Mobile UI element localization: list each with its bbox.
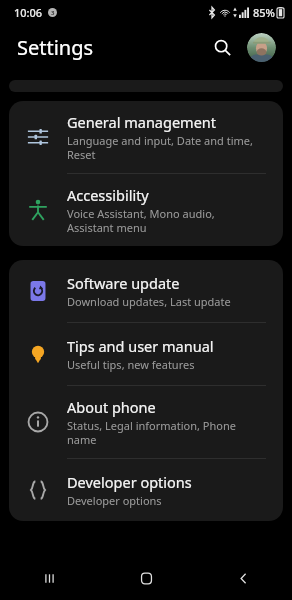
staticText: 85%: [253, 5, 275, 20]
staticText: Useful tips, new features: [67, 357, 195, 372]
button[interactable]: Accessibility: [9, 174, 283, 246]
button[interactable]: Profile: [247, 33, 276, 62]
staticText: Voice Assistant, Mono audio, Assistant m…: [67, 206, 215, 235]
button[interactable]: General management: [9, 101, 283, 173]
staticText: Language and input, Date and time, Reset: [67, 133, 253, 162]
staticText: Tips and user manual: [67, 336, 214, 356]
staticText: 10:06: [14, 5, 43, 20]
staticText: Settings: [17, 34, 94, 61]
staticText: Developer options: [67, 472, 192, 492]
staticText: 3: [51, 9, 55, 17]
staticText: Accessibility: [67, 185, 149, 205]
button[interactable]: About phone: [9, 386, 283, 458]
staticText: About phone: [67, 397, 156, 417]
button[interactable]: Back: [195, 556, 292, 600]
staticText: Software update: [67, 273, 180, 293]
staticText: Status, Legal information, Phone name: [67, 418, 236, 447]
staticText: General management: [67, 112, 217, 132]
button[interactable]: Tips and user manual: [9, 323, 283, 385]
staticText: Developer options: [67, 493, 162, 508]
button[interactable]: Developer options: [9, 459, 283, 521]
staticText: Download updates, Last update: [67, 294, 231, 309]
button[interactable]: Search: [207, 32, 237, 62]
button[interactable]: Software update: [9, 260, 283, 322]
button[interactable]: Recents: [0, 556, 98, 600]
button[interactable]: Home: [98, 556, 195, 600]
